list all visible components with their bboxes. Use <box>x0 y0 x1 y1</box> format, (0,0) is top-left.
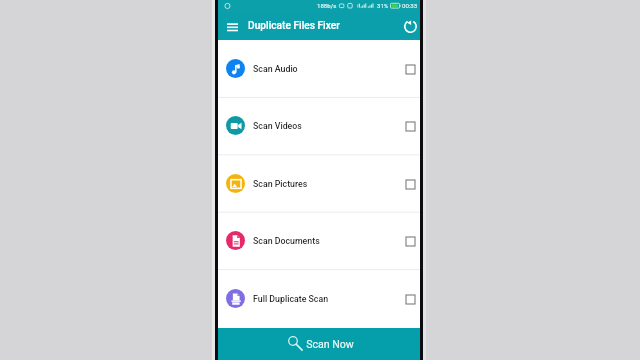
staticText: Duplicate Files Fixer <box>248 20 340 32</box>
button[interactable]: Select Scan Documents <box>400 231 420 251</box>
button[interactable]: Select Scan Videos <box>400 116 420 136</box>
button[interactable]: Scan Documents <box>218 212 420 269</box>
staticText: Scan Now <box>306 338 354 350</box>
button[interactable]: Full Duplicate Scan <box>218 270 420 327</box>
button[interactable]: Menu <box>222 16 243 37</box>
button[interactable]: Refresh <box>401 17 419 35</box>
button[interactable]: Select Scan Pictures <box>400 174 420 194</box>
button[interactable]: Scan Now <box>218 328 420 360</box>
staticText: 31% <box>377 2 389 9</box>
staticText: Full Duplicate Scan <box>253 294 329 304</box>
staticText: Scan Audio <box>253 64 298 74</box>
button[interactable]: Scan Audio <box>218 40 420 97</box>
staticText: 188b/s <box>317 2 337 9</box>
staticText: 00:33 <box>402 2 418 9</box>
staticText: Scan Videos <box>253 121 302 131</box>
button[interactable]: Scan Pictures <box>218 155 420 212</box>
staticText: Scan Pictures <box>253 179 308 189</box>
staticText: Scan Documents <box>253 236 320 246</box>
button[interactable]: Scan Videos <box>218 97 420 154</box>
button[interactable]: Select Scan Audio <box>400 59 420 79</box>
button[interactable]: Select Full Duplicate Scan <box>400 289 420 309</box>
